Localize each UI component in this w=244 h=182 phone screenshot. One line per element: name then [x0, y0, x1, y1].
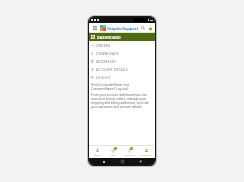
staticText: HOME: [94, 154, 101, 157]
button[interactable]: Back: [137, 158, 144, 165]
button[interactable]: LOGOUT: [89, 73, 155, 81]
button[interactable]: Open menu: [91, 24, 98, 31]
button[interactable]: ORDERS: [89, 41, 155, 49]
staticText: GraphicSupport: [107, 26, 139, 31]
button[interactable]: Account: [138, 146, 155, 158]
staticText: ADDRESSES: [96, 59, 116, 64]
staticText: CART: [110, 154, 116, 157]
button[interactable]: ADDRESSES: [89, 57, 155, 65]
staticText: ORDERS: [96, 43, 110, 48]
staticText: DOWNLOADS: [96, 51, 119, 56]
staticText: From your account dashboard you can view…: [91, 93, 153, 109]
button[interactable]: DOWNLOADS: [89, 49, 155, 57]
button[interactable]: Home: [119, 158, 126, 165]
button[interactable]: Home: [89, 146, 105, 158]
staticText: ACCOUNT DETAILS: [96, 67, 128, 72]
button[interactable]: DASHBOARD: [89, 33, 155, 41]
button[interactable]: Search: [139, 24, 146, 31]
button[interactable]: Cart: [148, 24, 153, 32]
button[interactable]: Cart: [105, 146, 121, 158]
staticText: WISHLIST: [125, 154, 135, 157]
button[interactable]: Recents: [100, 158, 107, 165]
button[interactable]: ACCOUNT DETAILS: [89, 65, 155, 73]
staticText: ACCOUNT: [141, 154, 152, 157]
staticText: LOGOUT: [96, 75, 111, 80]
staticText: DASHBOARD: [97, 35, 121, 40]
staticText: Hello CustomerName (not CustomerName? Lo…: [91, 83, 153, 91]
button[interactable]: Wishlist: [121, 146, 138, 158]
